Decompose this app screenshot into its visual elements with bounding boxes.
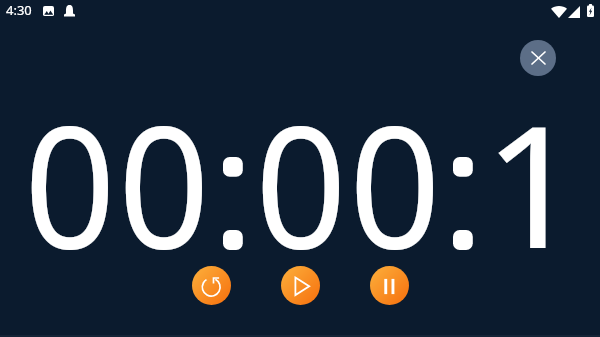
button[interactable]: Reset: [192, 266, 231, 305]
staticText: 1: [483, 68, 584, 297]
staticText: 0: [349, 68, 442, 297]
staticText: 0: [255, 68, 348, 297]
staticText: 4:30: [6, 1, 32, 19]
button[interactable]: Pause: [370, 266, 409, 305]
button[interactable]: Play: [281, 266, 320, 305]
staticText: 0: [118, 68, 211, 297]
staticText: 0: [24, 68, 117, 297]
button[interactable]: Close: [520, 40, 556, 76]
